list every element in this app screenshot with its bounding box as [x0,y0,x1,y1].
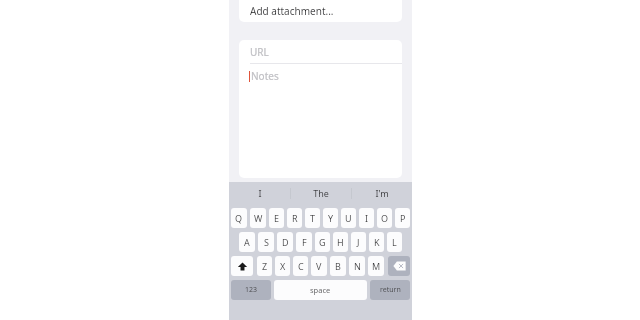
button[interactable]: G [315,232,330,252]
staticText: The [313,187,329,199]
staticText: Q [235,212,243,224]
staticText: V [316,260,322,272]
button[interactable]: 123 [231,280,271,300]
button[interactable]: Notes [239,64,402,178]
button[interactable]: B [330,256,346,276]
staticText: E [274,212,280,224]
button[interactable]: N [349,256,365,276]
staticText: Add attachment... [250,4,334,18]
button[interactable]: S [258,232,274,252]
button[interactable]: I [359,208,374,228]
button[interactable]: P [395,208,410,228]
button[interactable]: E [269,208,284,228]
staticText: K [374,236,380,248]
staticText: S [264,236,269,248]
staticText: O [381,212,389,224]
staticText: T [310,212,316,224]
staticText: I [365,212,369,224]
button[interactable]: The [291,182,351,204]
button[interactable]: L [387,232,402,252]
button[interactable]: Q [231,208,247,228]
staticText: URL [250,45,269,59]
staticText: R [292,212,298,224]
staticText: space [310,285,331,295]
button[interactable]: Y [323,208,338,228]
button[interactable]: A [239,232,255,252]
button[interactable]: M [368,256,384,276]
staticText: 123 [245,285,258,295]
staticText: N [354,260,361,272]
button[interactable]: D [277,232,293,252]
button[interactable]: C [293,256,308,276]
button[interactable]: return [370,280,410,300]
button[interactable]: Shift [231,256,253,276]
button[interactable]: Add attachment... [239,0,402,22]
staticText: X [280,260,286,272]
staticText: I'm [375,187,389,199]
button[interactable]: Backspace [388,256,410,276]
button[interactable]: H [333,232,348,252]
staticText: B [335,260,341,272]
button[interactable]: I'm [352,182,412,204]
staticText: G [319,236,326,248]
button[interactable]: K [369,232,384,252]
button[interactable]: T [305,208,320,228]
staticText: C [298,260,304,272]
button[interactable]: U [341,208,356,228]
button[interactable]: R [287,208,302,228]
staticText: P [400,212,406,224]
staticText: L [392,236,397,248]
staticText: A [244,236,250,248]
staticText: Y [328,212,334,224]
button[interactable]: O [377,208,392,228]
button[interactable]: V [311,256,327,276]
staticText: W [254,212,263,224]
staticText: Z [262,260,268,272]
button[interactable]: J [351,232,366,252]
button[interactable]: URL [239,40,402,63]
staticText: Notes [251,69,279,83]
staticText: F [302,236,307,248]
button[interactable]: space [274,280,367,300]
staticText: M [372,260,381,272]
staticText: return [380,285,401,295]
staticText: U [345,212,352,224]
button[interactable]: X [275,256,290,276]
button[interactable]: F [296,232,312,252]
staticText: I [258,187,262,199]
button[interactable]: I [229,182,290,204]
button[interactable]: Z [257,256,272,276]
staticText: H [337,236,344,248]
staticText: J [357,236,360,248]
button[interactable]: W [250,208,266,228]
staticText: D [282,236,289,248]
